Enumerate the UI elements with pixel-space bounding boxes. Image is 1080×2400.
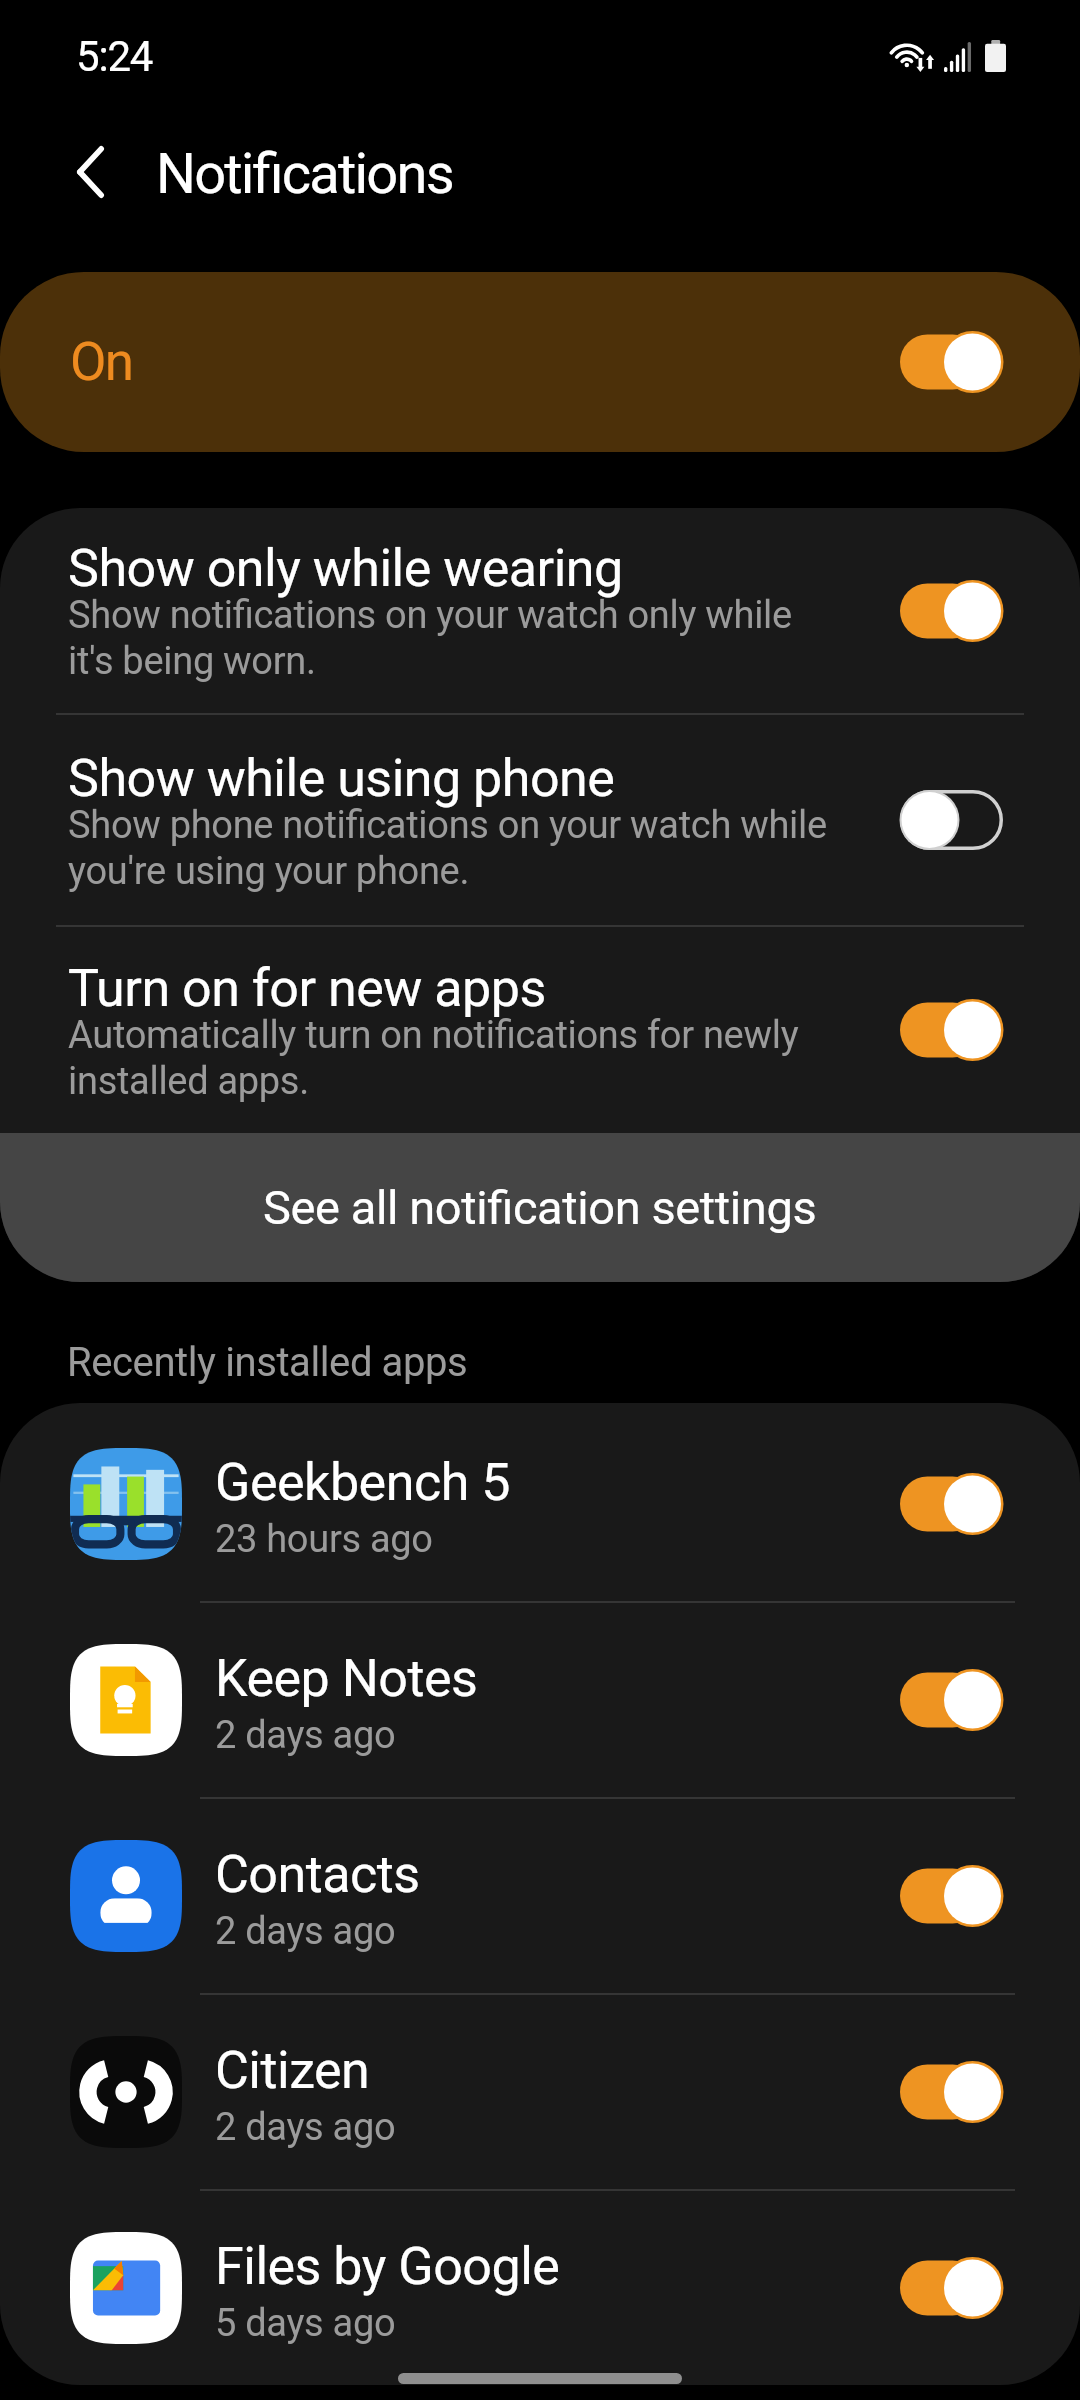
button[interactable]: Files by Google — [0, 2191, 1080, 2385]
button[interactable]: Keep Notes — [0, 1603, 1080, 1797]
staticText: 5 days ago — [215, 2301, 396, 2346]
button[interactable]: See all notification settings — [0, 1133, 1080, 1282]
staticText: Show only while wearing — [68, 538, 623, 599]
staticText: Notifications — [156, 141, 453, 207]
staticText: Files by Google — [215, 2236, 560, 2297]
staticText: 5:24 — [76, 32, 153, 81]
staticText: Keep Notes — [215, 1648, 478, 1709]
staticText: 2 days ago — [215, 2105, 396, 2150]
button[interactable]: Show while using phone, off — [900, 789, 1003, 851]
staticText: 2 days ago — [215, 1713, 396, 1758]
staticText: Show notifications on your watch only wh… — [68, 593, 792, 683]
staticText: Contacts — [215, 1844, 420, 1905]
staticText: Turn on for new apps — [68, 958, 546, 1019]
staticText: Citizen — [215, 2040, 370, 2101]
staticText: On — [70, 331, 133, 393]
staticText: 2 days ago — [215, 1909, 396, 1954]
staticText: Geekbench 5 — [215, 1452, 510, 1513]
staticText: Automatically turn on notifications for … — [68, 1013, 799, 1103]
button[interactable]: Show only while wearing — [0, 508, 1080, 713]
staticText: 23 hours ago — [215, 1517, 433, 1562]
button[interactable]: Citizen — [0, 1995, 1080, 2189]
button[interactable]: Keep Notes, on — [900, 1669, 1003, 1731]
button[interactable]: Turn on for new apps — [0, 927, 1080, 1133]
button[interactable]: Notifications, on — [900, 331, 1003, 393]
button[interactable]: Turn on for new apps, on — [900, 999, 1003, 1061]
button[interactable]: Geekbench 5 — [0, 1407, 1080, 1601]
button[interactable]: Show while using phone — [0, 715, 1080, 925]
button[interactable]: Back — [38, 120, 142, 224]
button[interactable]: On — [0, 272, 1080, 452]
button[interactable]: Geekbench 5, on — [900, 1473, 1003, 1535]
staticText: Recently installed apps — [67, 1339, 468, 1386]
button[interactable]: Files by Google, on — [900, 2257, 1003, 2319]
button[interactable]: Contacts, on — [900, 1865, 1003, 1927]
button[interactable]: Citizen, on — [900, 2061, 1003, 2123]
button[interactable]: Contacts — [0, 1799, 1080, 1993]
staticText: See all notification settings — [263, 1180, 817, 1235]
button[interactable]: Show only while wearing, on — [900, 580, 1003, 642]
staticText: Show while using phone — [68, 748, 615, 809]
staticText: Show phone notifications on your watch w… — [68, 803, 827, 893]
